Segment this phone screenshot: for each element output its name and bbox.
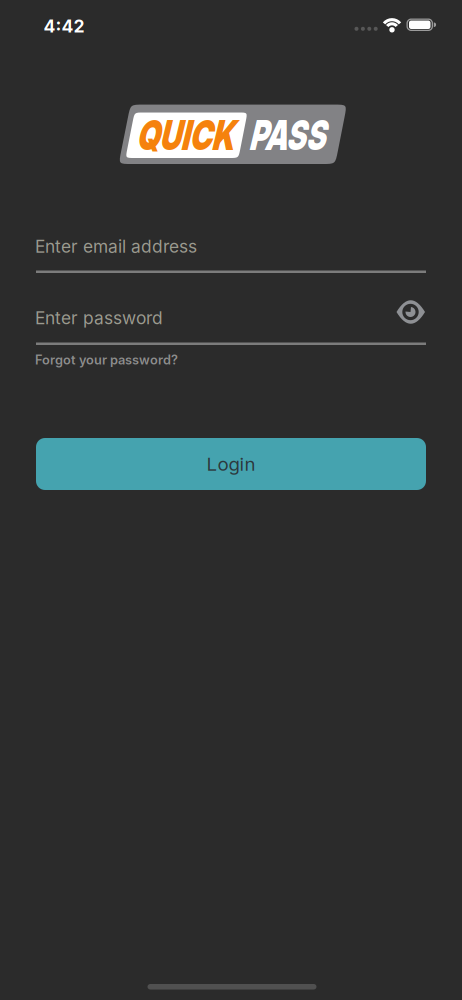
staticText: Enter password [35, 307, 163, 328]
textField[interactable]: Enter email address [35, 236, 426, 257]
staticText: Login [206, 453, 255, 475]
button[interactable]: Show password [394, 299, 426, 324]
staticText: PASS [236, 110, 345, 160]
button[interactable]: Forgot your password? [35, 352, 178, 367]
staticText: 4:42 [43, 15, 84, 37]
staticText: Forgot your password? [35, 352, 178, 367]
staticText: Enter email address [35, 236, 197, 257]
button[interactable]: Login [36, 438, 426, 490]
secureTextField[interactable]: Enter password [35, 307, 426, 328]
staticText: QUICK [123, 110, 255, 160]
